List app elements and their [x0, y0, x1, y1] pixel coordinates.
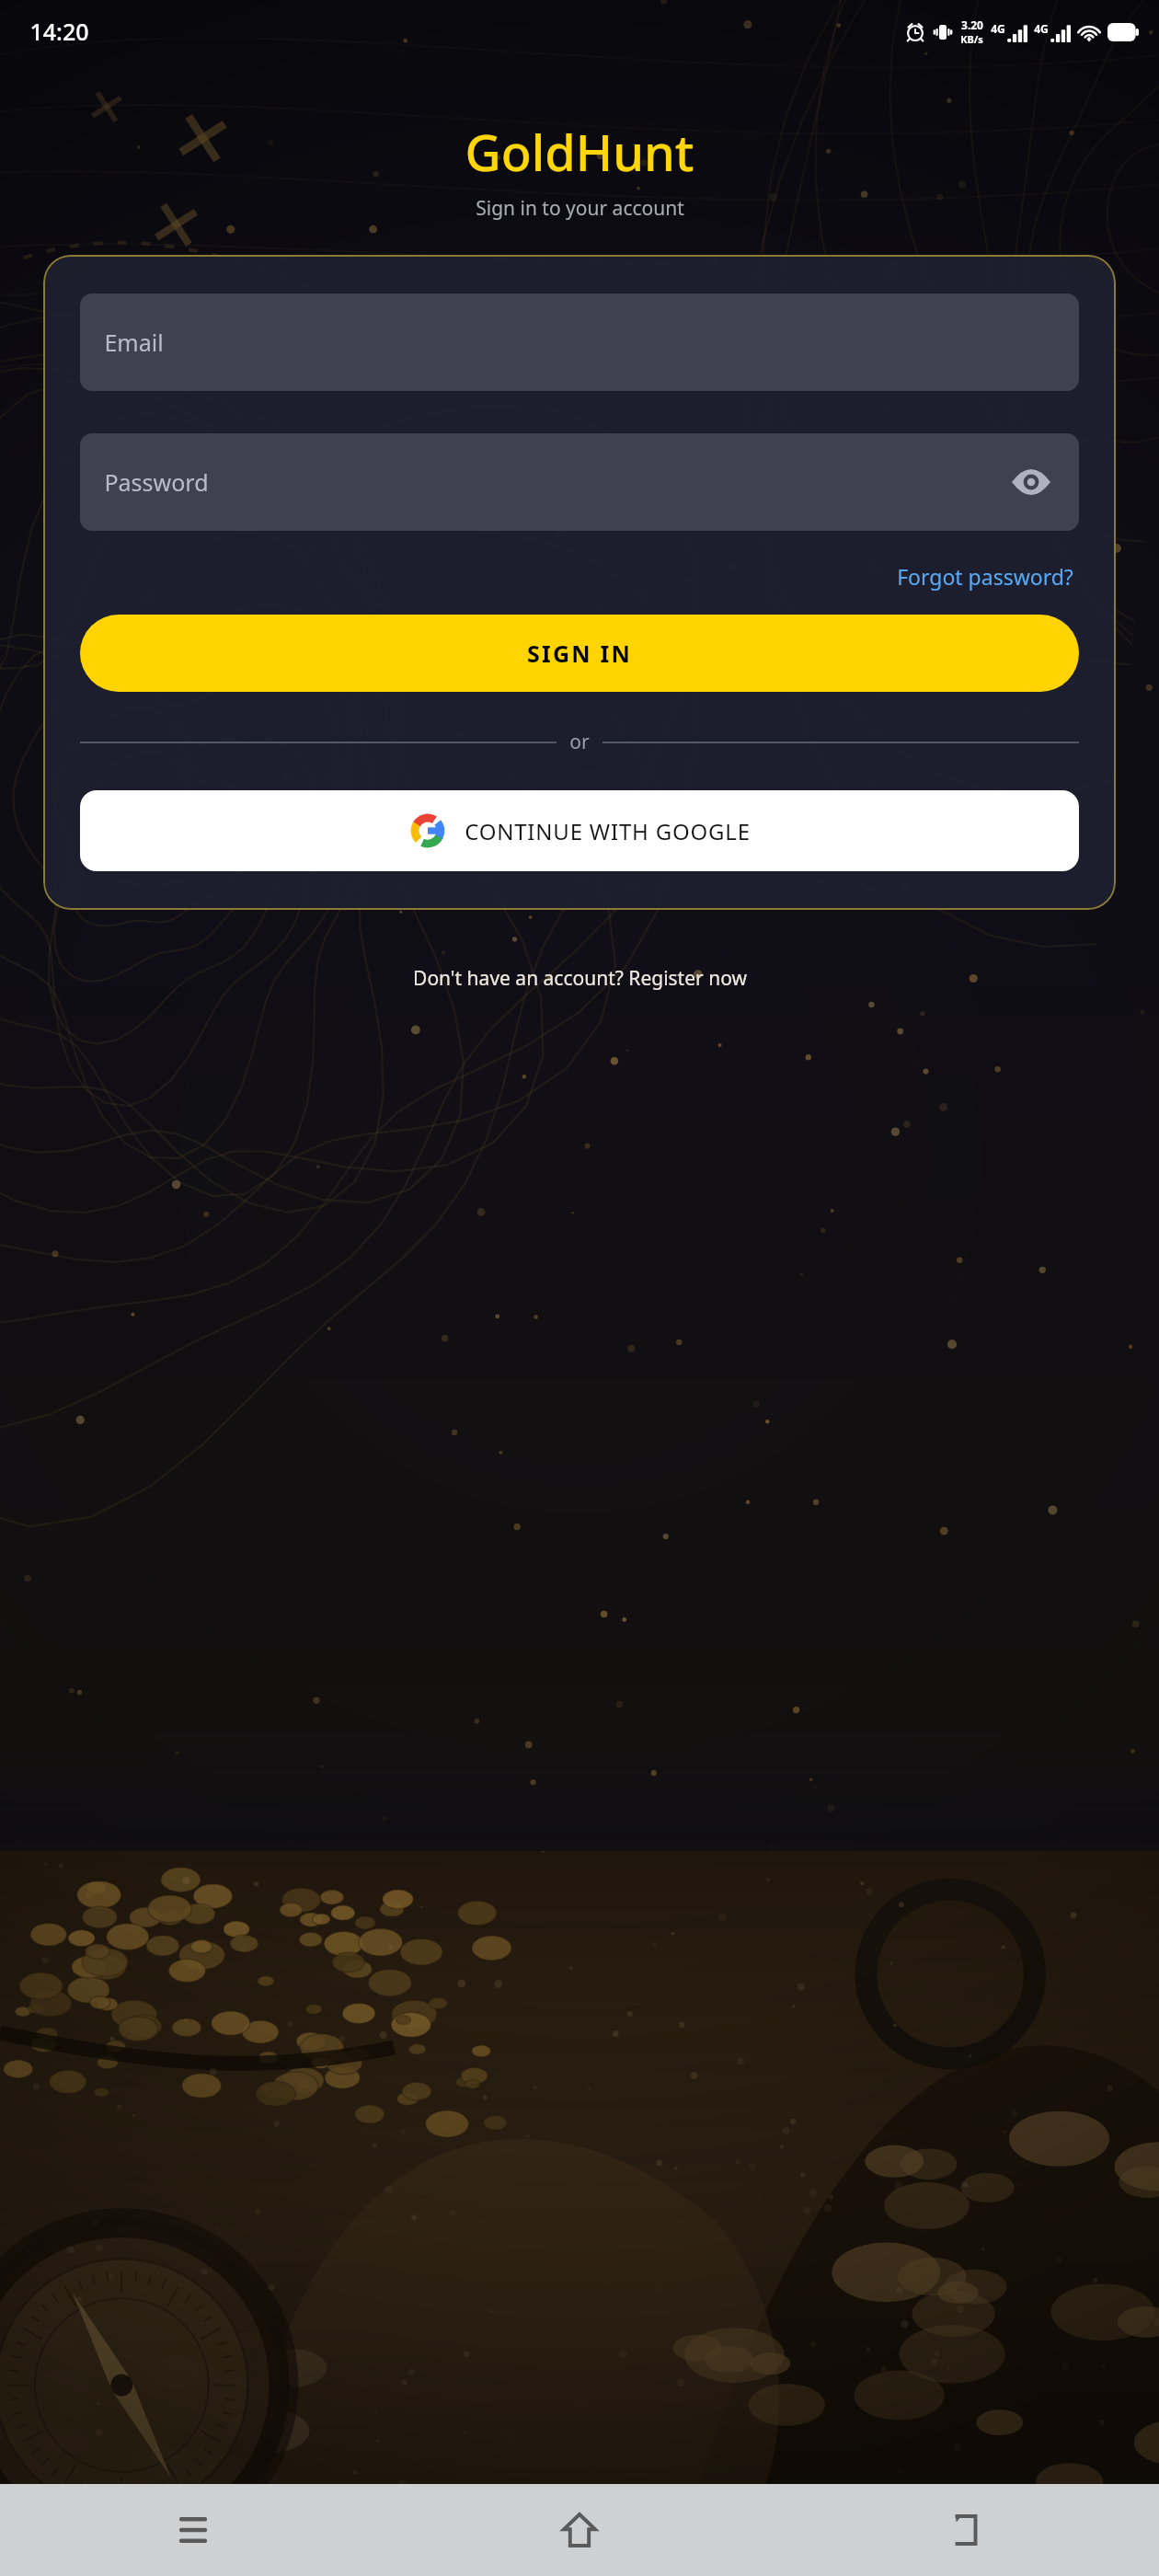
- staticText: Sign in to your account: [476, 195, 684, 222]
- staticText: Don't have an account? Register now: [413, 965, 747, 992]
- staticText: 4G: [991, 21, 1005, 36]
- button[interactable]: Recent apps: [0, 2484, 386, 2576]
- staticText: Forgot password?: [897, 562, 1073, 591]
- button[interactable]: CONTINUE WITH GOOGLE: [80, 790, 1079, 871]
- button[interactable]: Back: [773, 2484, 1159, 2576]
- staticText: 14:20: [29, 16, 89, 47]
- button[interactable]: Email: [80, 293, 1079, 391]
- button[interactable]: Password: [80, 433, 1079, 531]
- button[interactable]: SIGN IN: [80, 615, 1079, 692]
- button[interactable]: Home: [386, 2484, 773, 2576]
- staticText: GoldHunt: [465, 118, 694, 186]
- staticText: Password: [104, 466, 209, 498]
- staticText: 3.20: [961, 17, 983, 32]
- staticText: KB/s: [960, 32, 983, 46]
- staticText: SIGN IN: [527, 638, 632, 669]
- button[interactable]: Don't have an account? Register now: [398, 958, 762, 999]
- staticText: 4G: [1034, 21, 1049, 36]
- button[interactable]: Show password: [1007, 458, 1055, 506]
- staticText: or: [569, 729, 590, 755]
- staticText: CONTINUE WITH GOOGLE: [465, 816, 751, 846]
- button[interactable]: Forgot password?: [891, 555, 1079, 598]
- staticText: Email: [104, 327, 164, 358]
